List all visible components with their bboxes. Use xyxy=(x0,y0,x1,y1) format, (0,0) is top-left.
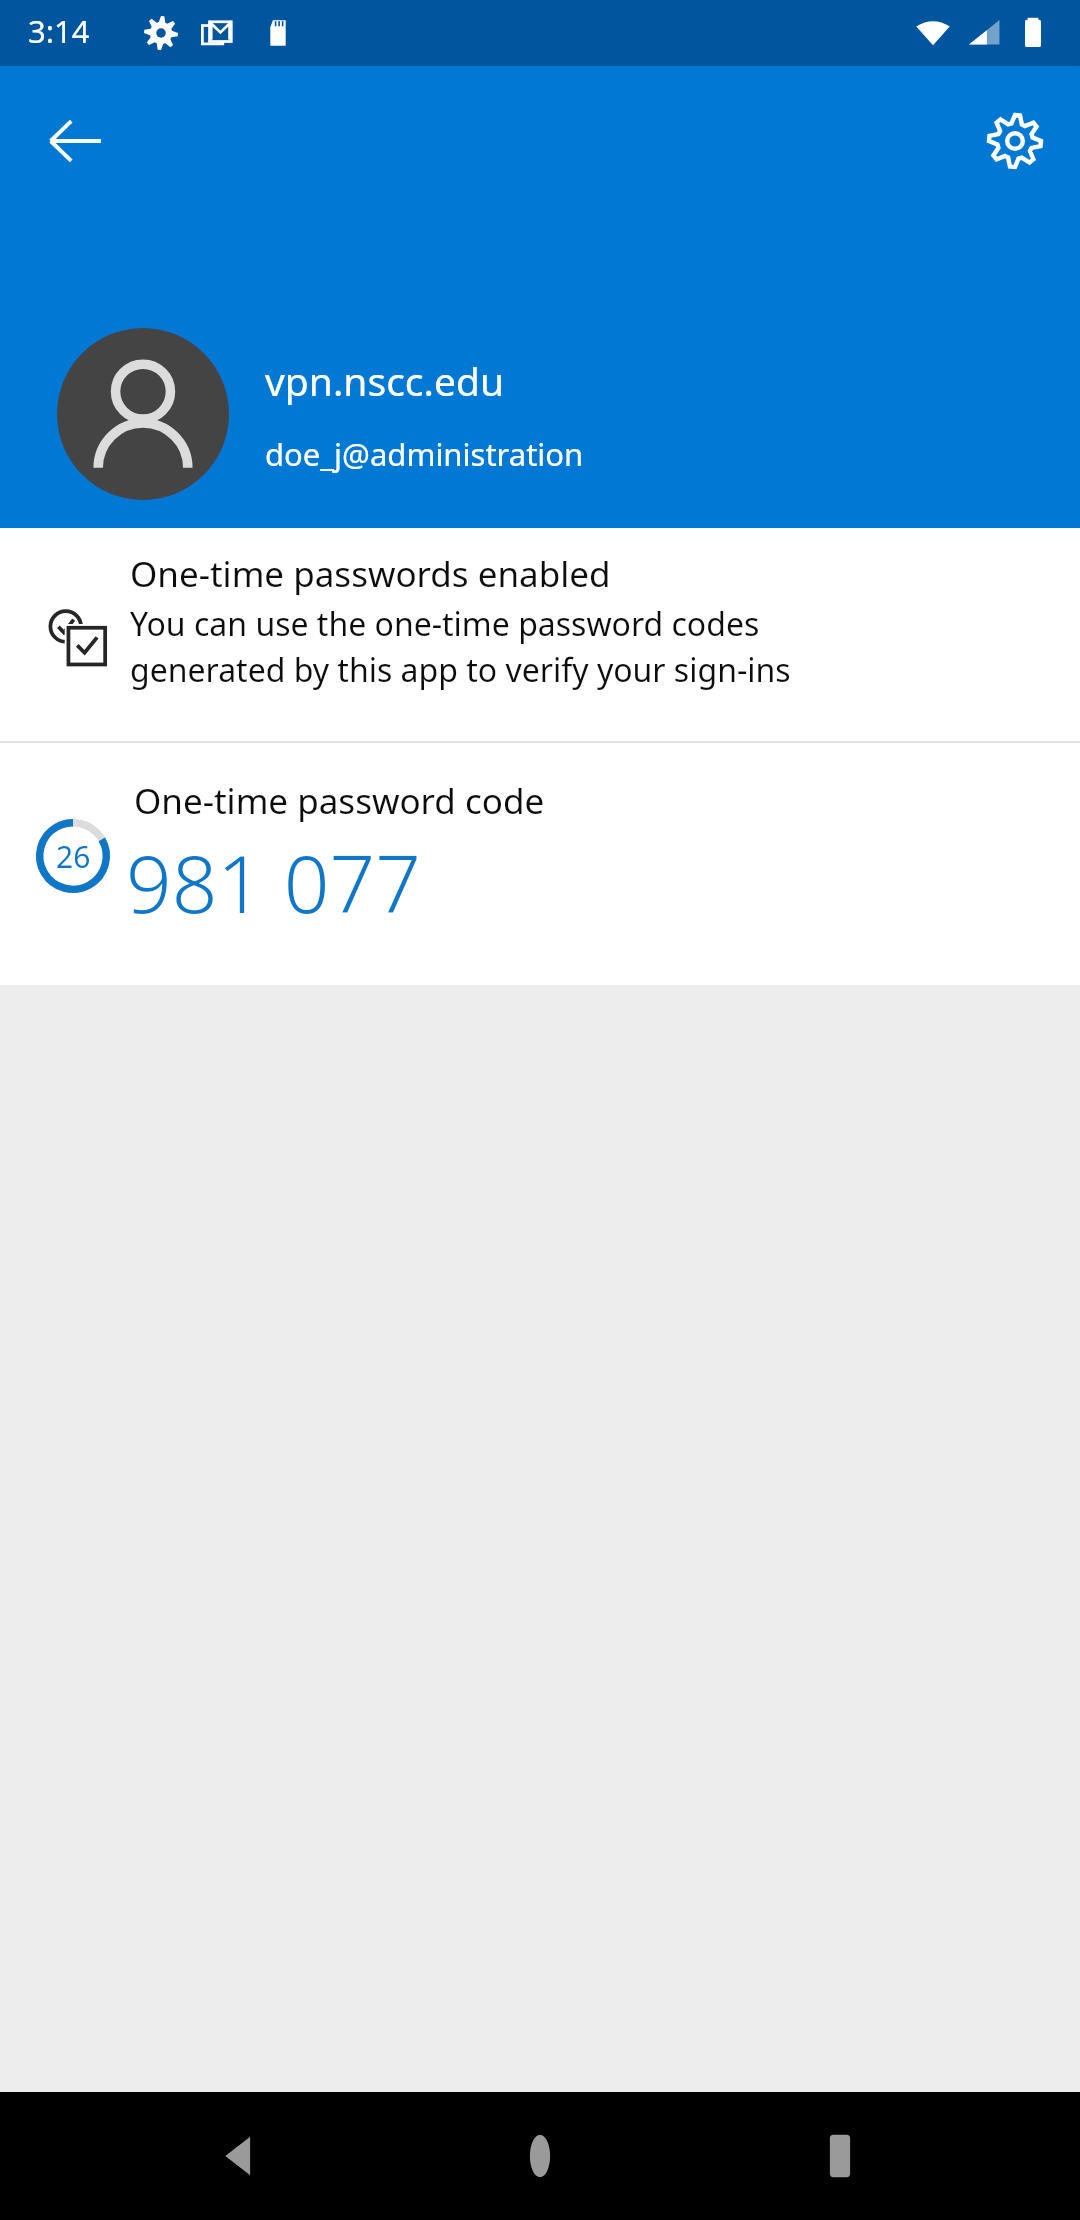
staticText: 3:14 xyxy=(28,10,90,52)
staticText: vpn.nscc.edu xyxy=(265,354,505,407)
staticText: 26 xyxy=(56,836,91,877)
staticText: You can use the one-time password codes … xyxy=(130,602,791,691)
button[interactable]: Home xyxy=(480,2096,600,2216)
staticText: One-time passwords enabled xyxy=(130,550,611,598)
button[interactable]: Back xyxy=(22,88,128,194)
staticText: 981 077 xyxy=(126,827,421,936)
button[interactable]: One-time passwords enabled xyxy=(0,528,1080,741)
staticText: doe_j@administration xyxy=(265,433,584,475)
button[interactable]: Recent apps xyxy=(780,2096,900,2216)
staticText: One-time password code xyxy=(134,777,545,825)
button[interactable]: Settings xyxy=(962,88,1068,194)
button[interactable]: 26 xyxy=(0,743,1080,985)
button[interactable]: Back xyxy=(180,2096,300,2216)
